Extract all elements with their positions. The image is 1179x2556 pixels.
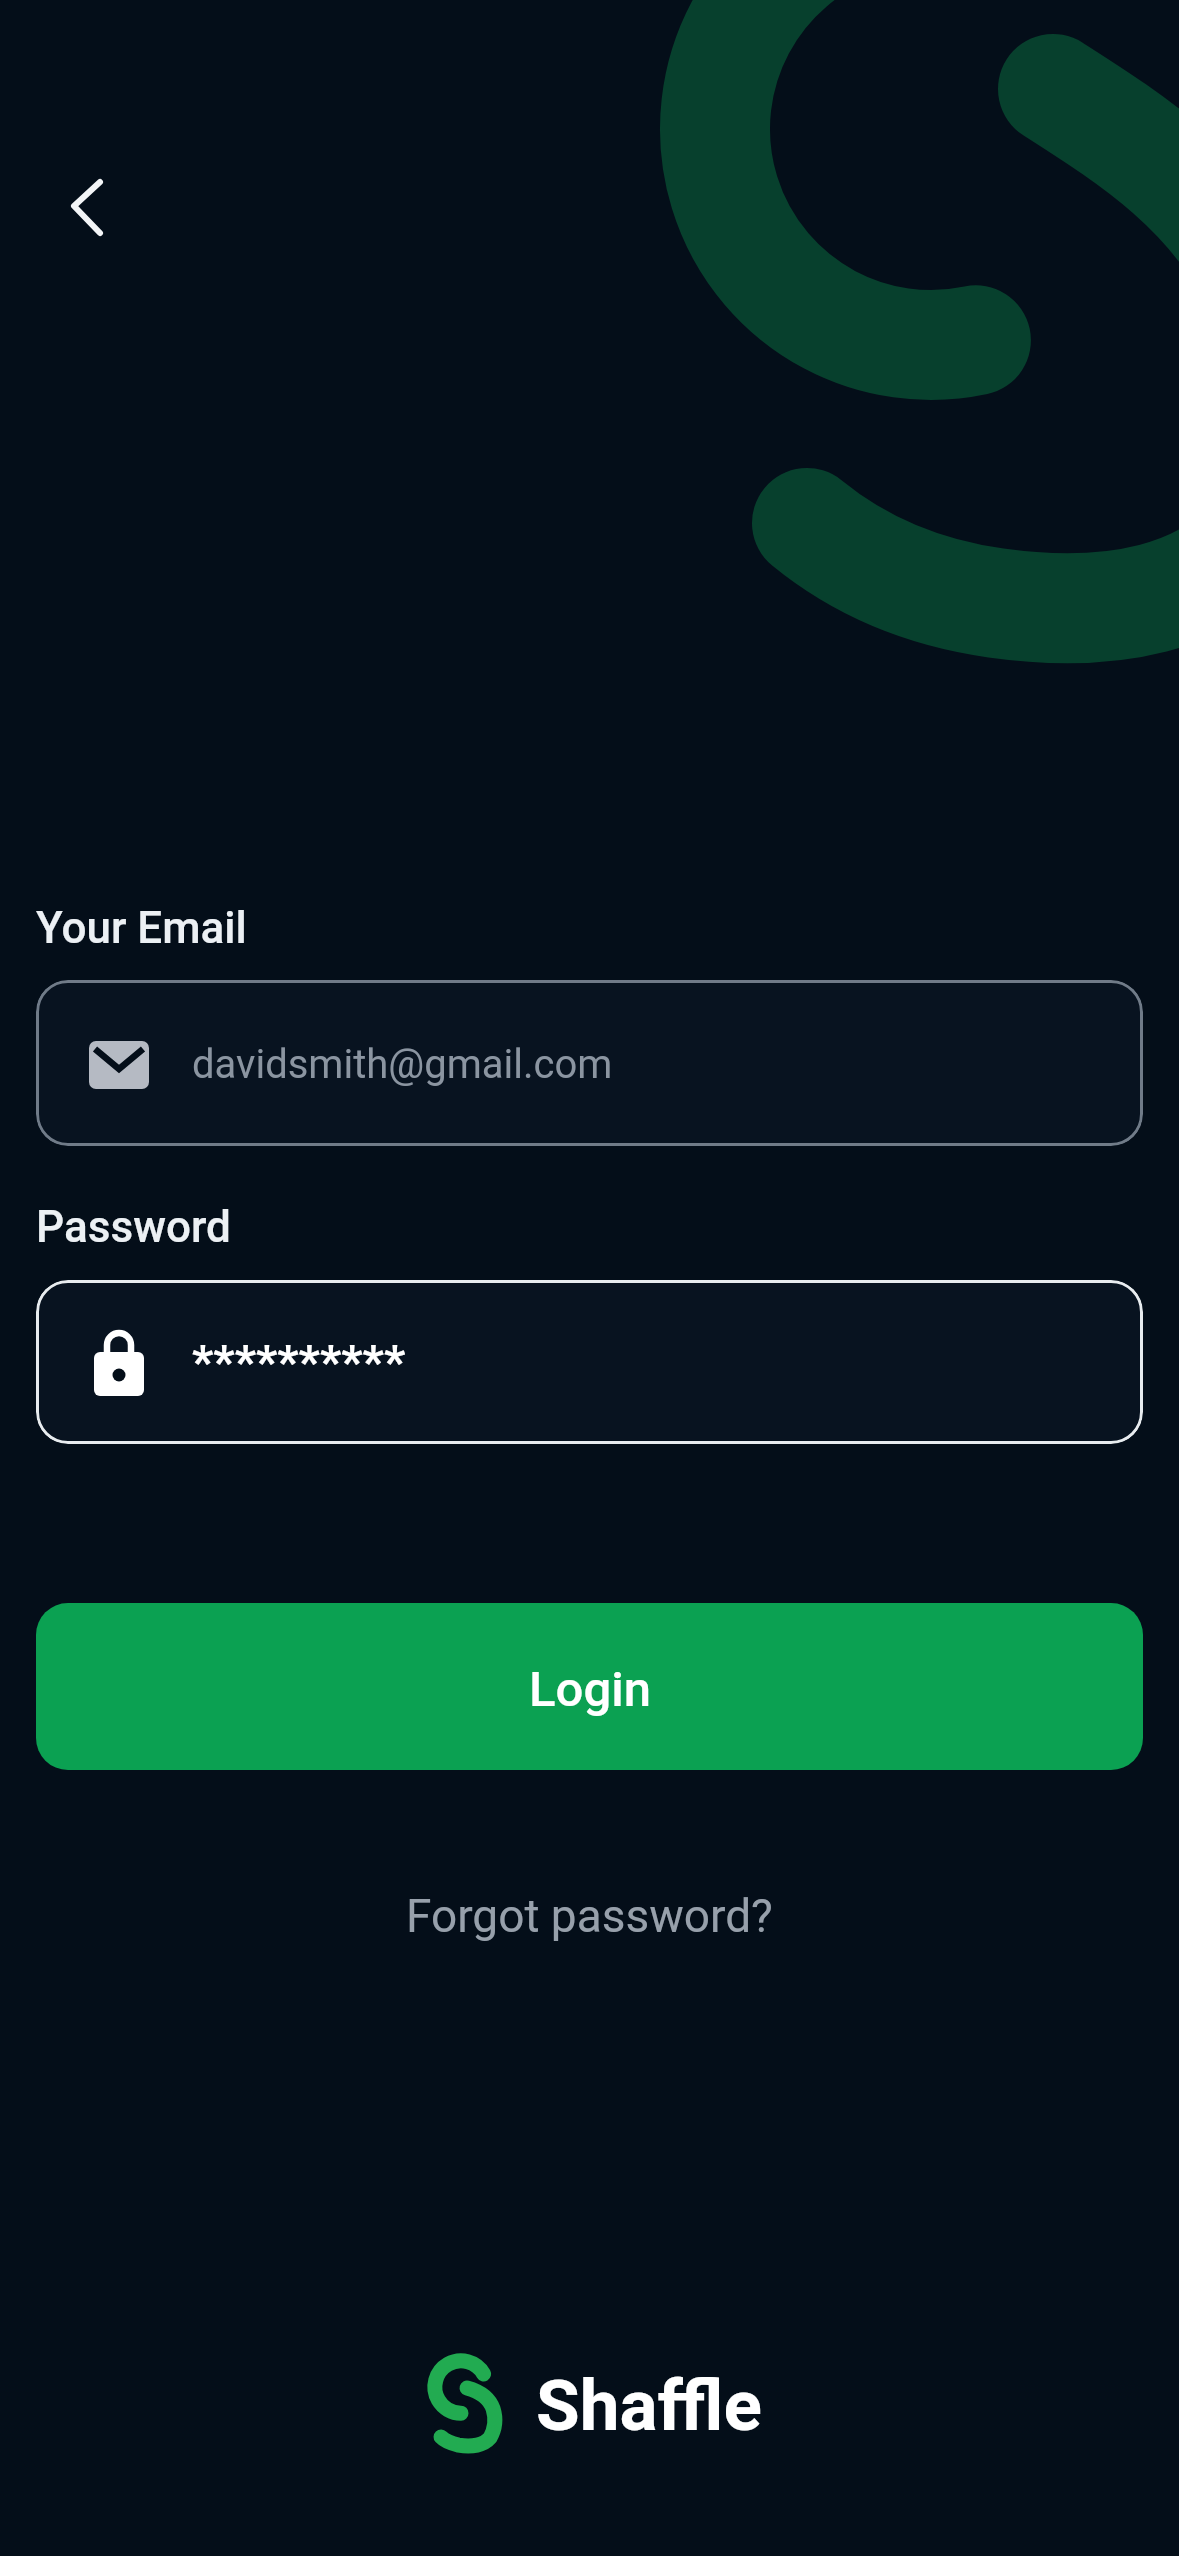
staticText: Forgot password? xyxy=(406,1889,773,1943)
button[interactable]: Login xyxy=(36,1603,1143,1770)
button[interactable]: ********** xyxy=(36,1280,1143,1444)
staticText: davidsmith@gmail.com xyxy=(192,1041,613,1088)
button[interactable]: davidsmith@gmail.com xyxy=(36,980,1143,1146)
staticText: Login xyxy=(529,1661,651,1718)
staticText: ********** xyxy=(192,1334,406,1389)
button[interactable] xyxy=(48,164,120,236)
staticText: Shaffle xyxy=(536,2364,762,2447)
staticText: Password xyxy=(36,1201,231,1253)
button[interactable]: Forgot password? xyxy=(0,1884,1179,1948)
staticText: Your Email xyxy=(36,902,247,954)
